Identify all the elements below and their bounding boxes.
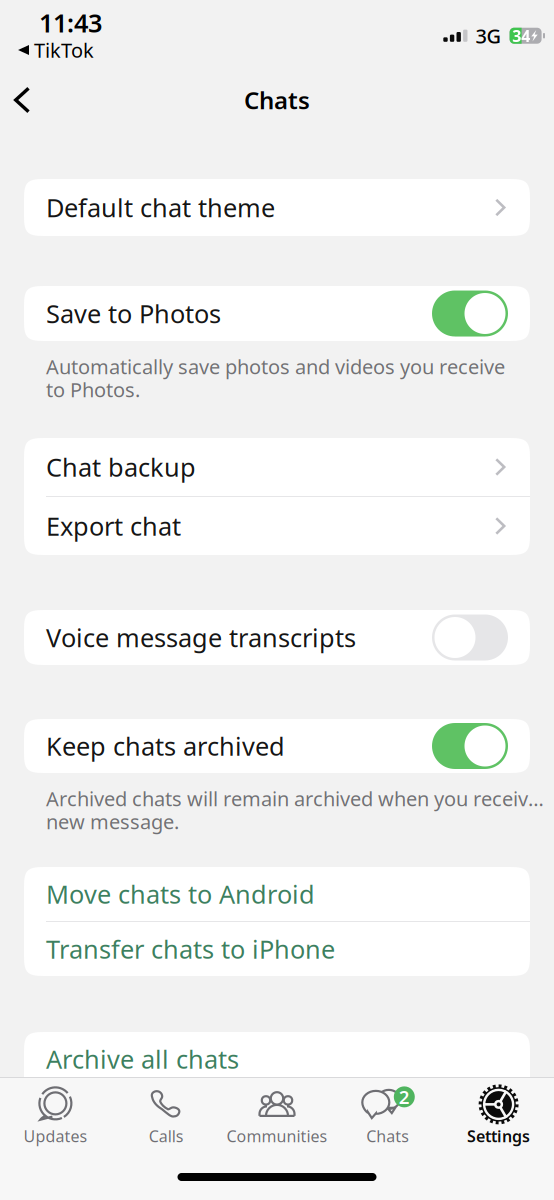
staticText: TikTok	[34, 37, 94, 63]
staticText: 2	[399, 1084, 410, 1109]
staticText: Chats	[244, 84, 310, 116]
staticText: Clear all chats	[46, 1097, 212, 1131]
staticText: Voice message transcripts	[46, 621, 356, 654]
staticText: Export chat	[46, 509, 181, 543]
button[interactable]: Default chat theme	[24, 179, 530, 236]
button[interactable]: Transfer chats to iPhone	[24, 922, 530, 976]
button[interactable]: Chat backup	[24, 438, 530, 496]
button[interactable]: Calls	[111, 1078, 222, 1154]
staticText: Settings	[467, 1125, 530, 1147]
staticText: Calls	[149, 1125, 184, 1147]
staticText: Archived chats will remain archived when…	[46, 785, 554, 812]
staticText: Default chat theme	[46, 191, 275, 224]
button[interactable]: Archive all chats	[24, 1032, 530, 1086]
staticText: Transfer chats to iPhone	[46, 932, 335, 966]
button[interactable]: Updates	[0, 1078, 111, 1154]
button[interactable]: Export chat	[24, 497, 530, 555]
staticText: 11:43	[39, 6, 102, 39]
staticText: Save to Photos	[46, 297, 221, 330]
button[interactable]: Voice message transcripts	[24, 610, 530, 665]
button[interactable]: Settings	[443, 1078, 554, 1154]
button[interactable]: Communities	[222, 1078, 332, 1154]
staticText: Chats	[366, 1125, 409, 1147]
button[interactable]: Save to Photos	[24, 286, 530, 341]
staticText: Move chats to Android	[46, 877, 315, 911]
button[interactable]: Keep chats archived	[24, 719, 530, 773]
staticText: 34	[512, 25, 530, 46]
staticText: Chat backup	[46, 450, 196, 484]
button[interactable]: 2	[332, 1078, 443, 1154]
staticText: to Photos.	[46, 376, 140, 403]
staticText: new message.	[46, 808, 179, 835]
staticText: Automatically save photos and videos you…	[46, 353, 505, 380]
staticText: Updates	[23, 1125, 87, 1147]
staticText: Communities	[226, 1125, 327, 1147]
staticText: Keep chats archived	[46, 729, 285, 763]
button[interactable]: Clear all chats	[24, 1087, 530, 1141]
staticText: 3G	[476, 22, 502, 49]
button[interactable]: Back	[0, 77, 45, 123]
button[interactable]: Move chats to Android	[24, 867, 530, 921]
staticText: Archive all chats	[46, 1042, 239, 1076]
